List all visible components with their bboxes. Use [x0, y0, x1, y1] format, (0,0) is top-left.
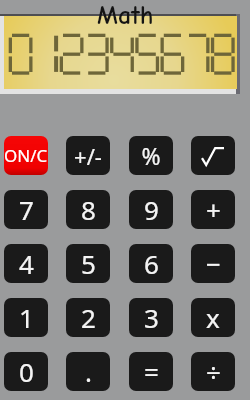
button[interactable]: 0: [4, 352, 48, 391]
staticText: 9: [144, 192, 159, 227]
button[interactable]: +: [191, 190, 235, 229]
button[interactable]: 9: [129, 190, 173, 229]
button[interactable]: ON/C: [4, 136, 48, 175]
staticText: Math: [97, 1, 154, 31]
button[interactable]: =: [129, 352, 173, 391]
button[interactable]: 2: [66, 298, 110, 337]
button[interactable]: +/-: [66, 136, 110, 175]
staticText: ON/C: [4, 144, 48, 167]
button[interactable]: 6: [129, 244, 173, 283]
staticText: 8: [81, 192, 96, 227]
button[interactable]: x: [191, 298, 235, 337]
staticText: x: [206, 300, 220, 335]
staticText: 0: [19, 354, 34, 389]
staticText: −: [206, 246, 221, 281]
button[interactable]: Square root: [191, 136, 235, 175]
button[interactable]: 4: [4, 244, 48, 283]
button[interactable]: 8: [66, 190, 110, 229]
staticText: =: [144, 354, 159, 389]
button[interactable]: ÷: [191, 352, 235, 391]
button[interactable]: 7: [4, 190, 48, 229]
staticText: 1: [19, 300, 34, 335]
button[interactable]: 3: [129, 298, 173, 337]
staticText: ÷: [206, 354, 221, 389]
staticText: 7: [19, 192, 34, 227]
staticText: %: [141, 140, 161, 171]
button[interactable]: 1: [4, 298, 48, 337]
staticText: +/-: [74, 141, 102, 171]
staticText: .: [85, 354, 92, 389]
staticText: 5: [81, 246, 96, 281]
button[interactable]: %: [129, 136, 173, 175]
staticText: 3: [144, 300, 159, 335]
staticText: +: [206, 192, 221, 227]
button[interactable]: −: [191, 244, 235, 283]
staticText: 2: [81, 300, 96, 335]
button[interactable]: 5: [66, 244, 110, 283]
staticText: 6: [144, 246, 159, 281]
staticText: 4: [19, 246, 34, 281]
button[interactable]: .: [66, 352, 110, 391]
